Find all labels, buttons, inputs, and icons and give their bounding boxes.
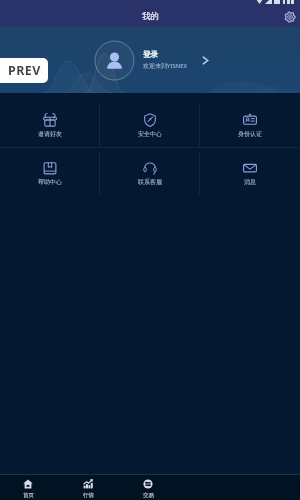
staticText: 登录 [143,50,158,59]
staticText: 联系客服 [138,178,162,186]
button[interactable]: Settings [282,9,298,25]
button[interactable]: 交易 [118,475,178,500]
button[interactable]: 邀请好友 [0,104,100,147]
staticText: 行情 [83,492,94,499]
staticText: 我的 [142,11,159,22]
button[interactable]: 身份认证 [200,104,300,147]
staticText: 首页 [23,492,34,499]
staticText: 邀请好友 [38,130,62,138]
button[interactable]: PREV [0,58,48,83]
staticText: 安全中心 [138,130,162,138]
staticText: 身份认证 [238,130,262,138]
staticText: PREV [8,62,41,79]
button[interactable]: 安全中心 [100,104,200,147]
button[interactable]: 行情 [58,475,118,500]
button[interactable]: 帮助中心 [0,152,100,195]
button[interactable]: 联系客服 [100,152,200,195]
staticText: 交易 [143,492,154,499]
staticText: 消息 [244,178,256,186]
button[interactable]: 登录 [0,27,300,93]
button[interactable]: 首页 [0,475,58,500]
button[interactable]: 消息 [200,152,300,195]
staticText: 帮助中心 [38,178,62,186]
staticText: 欢迎来到YISNEX [143,62,188,70]
